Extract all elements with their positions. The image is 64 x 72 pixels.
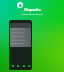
button[interactable]: Nav 1 [15,63,20,68]
staticText: Disposite [24,7,41,12]
button[interactable]: Nav 0 [10,63,15,68]
staticText: Smart waste tracking [21,13,43,16]
button[interactable]: App logo [17,2,23,8]
button[interactable]: Nav 2 [21,63,26,68]
button[interactable]: Nav 3 [26,63,31,68]
